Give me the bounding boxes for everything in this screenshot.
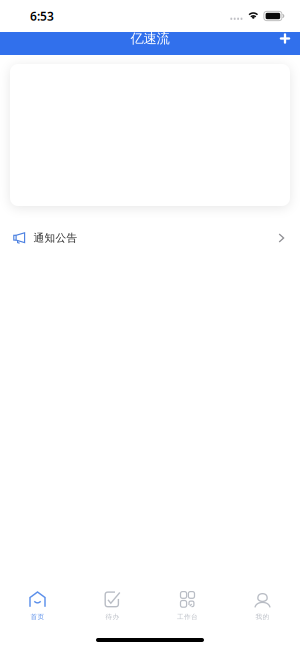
button[interactable]: Add [270,32,300,55]
button[interactable]: 待办 [75,587,150,631]
button[interactable]: 工作台 [150,587,225,631]
button[interactable]: 我的 [225,587,300,631]
staticText: 首页 [30,613,44,621]
staticText: 工作台 [177,613,198,621]
staticText: 通知公告 [33,231,77,244]
staticText: 我的 [255,613,269,621]
button[interactable]: 通知公告 [0,221,300,255]
staticText: 亿速流 [130,30,169,47]
staticText: 待办 [105,613,119,621]
staticText: 6:53 [30,8,54,24]
button[interactable]: 首页 [0,587,75,631]
